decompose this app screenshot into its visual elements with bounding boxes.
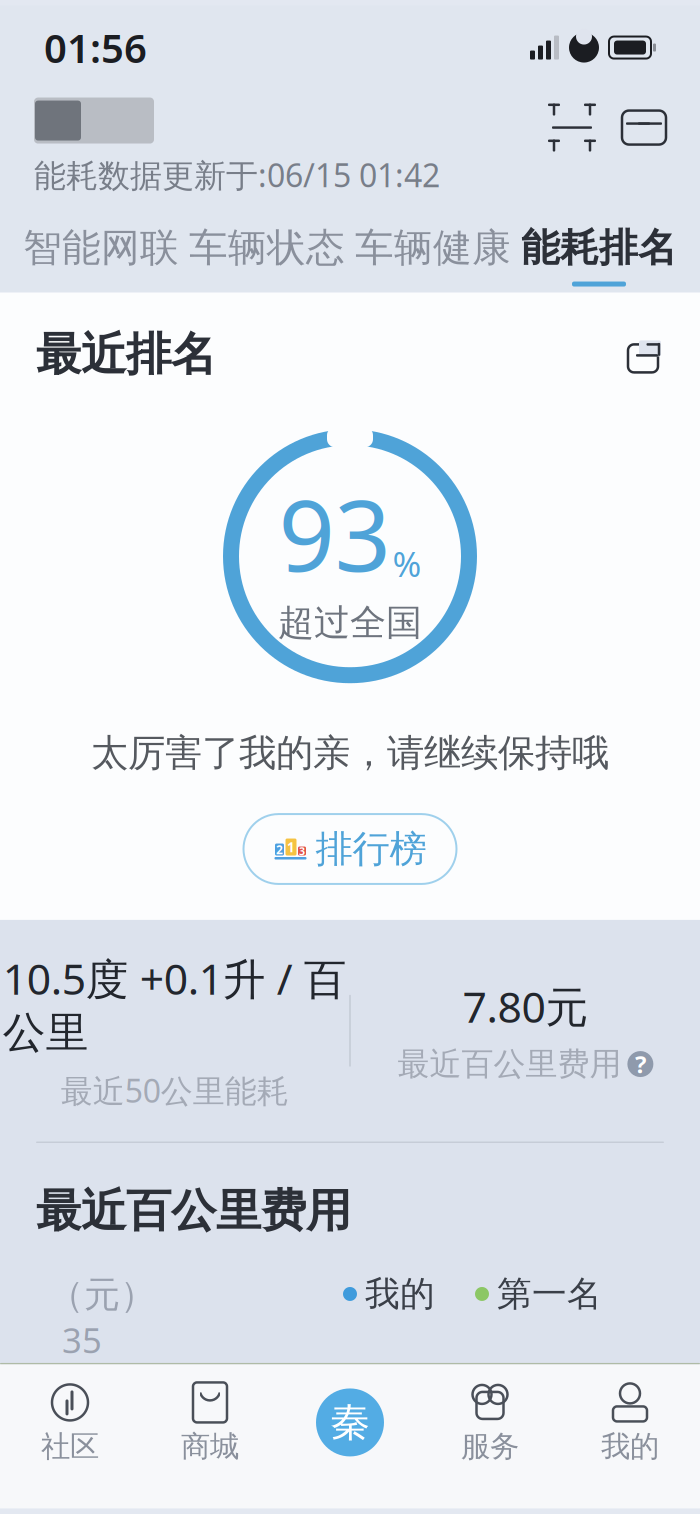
staticText: 车辆健康 <box>355 224 511 272</box>
button[interactable]: 秦 <box>280 1388 420 1456</box>
button[interactable]: 分享 <box>622 333 664 375</box>
staticText: ? <box>635 1048 646 1080</box>
staticText: 社区 <box>41 1428 99 1464</box>
button[interactable]: 车辆健康 <box>350 218 516 293</box>
button[interactable]: 服务 <box>420 1380 560 1464</box>
staticText: 秦 <box>330 1398 370 1447</box>
staticText: 最近排名 <box>36 326 216 382</box>
button[interactable]: 费用说明 <box>627 1048 653 1080</box>
staticText: 最近百公里费用 <box>36 1183 351 1239</box>
staticText: 1 <box>287 838 295 856</box>
button[interactable]: 扫一扫 <box>552 108 592 148</box>
staticText: 我的 <box>601 1428 659 1464</box>
staticText: 第一名 <box>497 1273 602 1315</box>
staticText: 最近百公里费用 <box>397 1044 621 1084</box>
staticText: 排行榜 <box>315 826 426 872</box>
staticText: % <box>392 541 421 587</box>
staticText: （元） <box>48 1273 156 1317</box>
button[interactable]: 商城 <box>140 1380 280 1464</box>
button[interactable]: 车辆状态 <box>184 218 350 293</box>
staticText: 车辆状态 <box>189 224 345 272</box>
staticText: 最近50公里能耗 <box>61 1069 289 1111</box>
staticText: 能耗数据更新于:06/15 01:42 <box>34 154 440 196</box>
staticText: 能耗排名 <box>521 224 677 272</box>
staticText: 3 <box>299 844 305 858</box>
staticText: 01:56 <box>44 21 147 74</box>
staticText: 7.80元 <box>462 978 588 1034</box>
button[interactable]: 消息 <box>622 111 666 145</box>
staticText: 我的 <box>365 1273 435 1315</box>
button[interactable]: 2 <box>243 814 456 884</box>
staticText: 商城 <box>181 1428 239 1464</box>
staticText: 超过全国 <box>278 601 422 645</box>
button[interactable]: 能耗排名 <box>516 218 682 293</box>
staticText: 智能网联 <box>23 224 179 272</box>
staticText: 93 <box>278 468 390 599</box>
button[interactable]: 我的 <box>560 1380 700 1464</box>
staticText: 35 <box>62 1317 102 1363</box>
staticText: 太厉害了我的亲，请继续保持哦 <box>91 730 609 776</box>
staticText: 服务 <box>461 1428 519 1464</box>
staticText: 2 <box>276 841 283 857</box>
button[interactable]: 社区 <box>0 1380 140 1464</box>
button[interactable]: 智能网联 <box>18 218 184 293</box>
staticText: 10.5度 +0.1升 / 百公里 <box>3 950 347 1059</box>
